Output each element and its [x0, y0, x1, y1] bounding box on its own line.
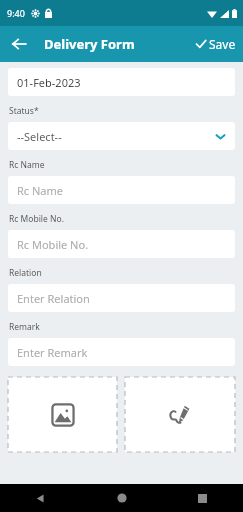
- staticText: 9:40: [7, 7, 25, 19]
- staticText: Rc Name: [17, 183, 64, 198]
- staticText: Delivery Form: [44, 35, 135, 53]
- button[interactable]: Add photo: [8, 377, 117, 452]
- staticText: Relation: [9, 267, 42, 279]
- button[interactable]: 01-Feb-2023: [8, 68, 235, 96]
- staticText: Status*: [9, 105, 39, 117]
- staticText: --Select--: [17, 129, 62, 144]
- button[interactable]: Save: [195, 36, 236, 52]
- button[interactable]: --Select--: [8, 122, 235, 150]
- staticText: Rc Mobile No.: [9, 213, 64, 225]
- button[interactable]: Back: [0, 484, 81, 512]
- button[interactable]: Rc Mobile No.: [8, 230, 235, 258]
- staticText: Remark: [9, 321, 40, 333]
- staticText: Save: [209, 36, 236, 52]
- button[interactable]: Recent apps: [162, 484, 243, 512]
- button[interactable]: Add signature: [125, 377, 235, 452]
- button[interactable]: Back: [4, 29, 34, 59]
- staticText: Enter Relation: [17, 291, 90, 306]
- staticText: Enter Remark: [17, 345, 88, 360]
- button[interactable]: Enter Remark: [8, 338, 235, 366]
- button[interactable]: Rc Name: [8, 176, 235, 204]
- staticText: Rc Mobile No.: [17, 237, 89, 252]
- button[interactable]: Home: [81, 484, 162, 512]
- staticText: Rc Name: [9, 159, 45, 171]
- button[interactable]: Enter Relation: [8, 284, 235, 312]
- staticText: 01-Feb-2023: [17, 75, 81, 90]
